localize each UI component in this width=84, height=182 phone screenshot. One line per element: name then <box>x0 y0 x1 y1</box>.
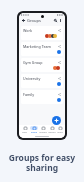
staticText: Gym Group <box>23 60 43 65</box>
staticText: Share <box>31 131 37 134</box>
staticText: Work <box>23 28 33 33</box>
button[interactable]: Groups <box>38 126 47 134</box>
staticText: Groups for easy sharing <box>0 152 84 174</box>
staticText: Marketing Team <box>23 44 51 49</box>
staticText: More <box>57 131 63 134</box>
button[interactable]: Files <box>20 126 29 134</box>
staticText: University <box>23 76 41 81</box>
button[interactable]: Marketing Team <box>21 42 63 56</box>
button[interactable]: University <box>21 74 63 88</box>
button[interactable]: Search <box>53 18 58 23</box>
staticText: Groups <box>27 18 41 23</box>
button[interactable]: Work <box>21 26 63 40</box>
button[interactable]: Share <box>29 126 38 134</box>
staticText: Family <box>23 92 35 97</box>
button[interactable]: More <box>56 126 64 134</box>
button[interactable]: Recent <box>47 126 56 134</box>
staticText: Groups <box>39 131 47 134</box>
button[interactable]: Create group <box>52 116 61 125</box>
button[interactable]: Back <box>21 18 26 23</box>
button[interactable]: Gym Group <box>21 58 63 72</box>
staticText: Files <box>22 131 27 134</box>
staticText: Recent <box>48 131 56 134</box>
button[interactable]: More options <box>58 18 63 23</box>
button[interactable]: Family <box>21 90 63 104</box>
